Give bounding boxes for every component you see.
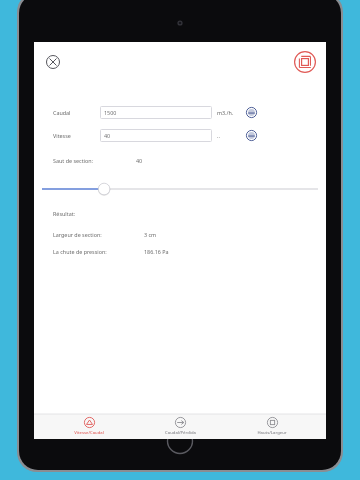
staticText: Caudal/Pérdida bbox=[165, 430, 196, 436]
button[interactable]: Info Vitesse bbox=[245, 129, 258, 142]
staticText: Largeur de section: bbox=[53, 231, 102, 238]
button[interactable]: Fermer bbox=[42, 51, 64, 73]
button[interactable]: Caudal/Pérdida bbox=[143, 414, 217, 439]
staticText: Vitesse bbox=[53, 132, 71, 139]
staticText: m3./h. bbox=[217, 109, 234, 116]
button[interactable]: 40 bbox=[100, 129, 212, 142]
staticText: Résultat: bbox=[53, 210, 76, 217]
staticText: Vitesse/Caudal bbox=[74, 430, 104, 436]
button[interactable]: Vitesse/Caudal bbox=[52, 414, 126, 439]
button[interactable]: Info Caudal bbox=[245, 106, 258, 119]
button[interactable]: Hauts/Largeur bbox=[235, 414, 309, 439]
staticText: 1500 bbox=[104, 109, 117, 116]
button[interactable] bbox=[39, 181, 321, 197]
button[interactable]: 1500 bbox=[100, 106, 212, 119]
staticText: 186.16 Pa bbox=[144, 248, 169, 255]
staticText: Hauts/Largeur bbox=[257, 430, 287, 436]
staticText: .. bbox=[217, 132, 220, 139]
staticText: 40 bbox=[136, 157, 143, 164]
staticText: 40 bbox=[104, 132, 111, 139]
staticText: 3 cm bbox=[144, 231, 157, 238]
button[interactable]: Section bbox=[292, 49, 318, 75]
staticText: La chute de pression: bbox=[53, 248, 107, 255]
staticText: Caudal bbox=[53, 109, 71, 116]
staticText: Saut de section: bbox=[53, 157, 94, 164]
